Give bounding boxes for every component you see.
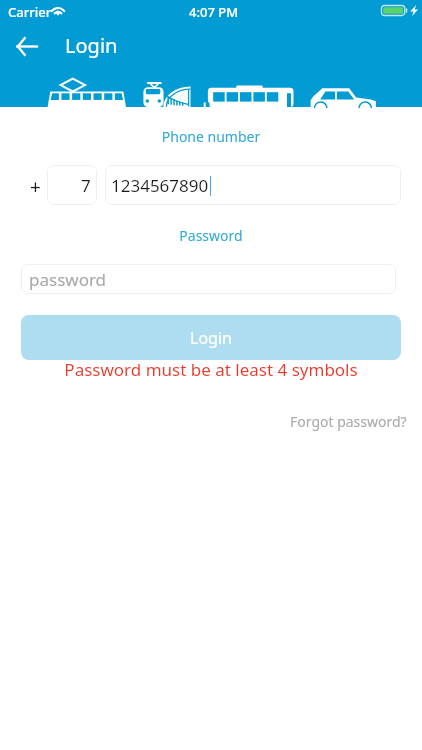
button[interactable]: Back [6,26,46,66]
button[interactable]: 7 [47,165,97,205]
button[interactable]: Forgot password? [284,409,413,434]
button[interactable]: 1234567890 [105,165,401,205]
staticText: + [30,174,41,200]
staticText: Login [190,327,232,349]
button[interactable]: password [21,264,396,294]
staticText: Password must be at least 4 symbols [0,358,422,381]
staticText: Phone number [0,127,422,146]
staticText: Password [0,226,422,245]
staticText: 1234567890 [111,174,209,197]
staticText: Login [65,32,118,59]
staticText: Forgot password? [290,412,407,431]
button[interactable]: Login [21,315,401,360]
staticText: Carrier [8,3,52,21]
staticText: password [29,268,107,291]
staticText: 7 [81,174,91,197]
staticText: 4:07 PM [189,3,239,21]
